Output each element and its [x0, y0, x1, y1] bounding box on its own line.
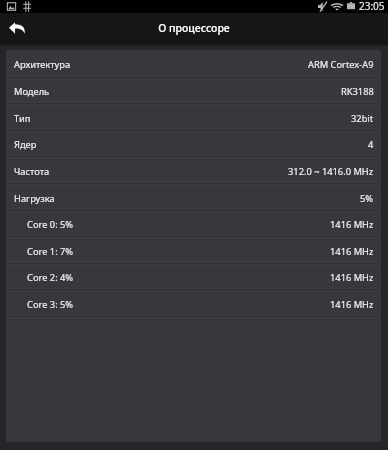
- staticText: Ядер: [14, 138, 37, 151]
- staticText: Core 3: 5%: [27, 298, 74, 311]
- button[interactable]: Core 3: 5%: [6, 291, 381, 318]
- staticText: Модель: [14, 85, 50, 98]
- button[interactable]: Core 0: 5%: [6, 212, 381, 238]
- staticText: Архитектура: [14, 58, 71, 71]
- staticText: Core 2: 4%: [27, 271, 74, 284]
- staticText: 5%: [360, 192, 374, 205]
- staticText: Нагрузка: [14, 192, 55, 205]
- staticText: 1416 MHz: [330, 298, 374, 311]
- button[interactable]: Core 1: 7%: [6, 238, 381, 265]
- button[interactable]: Тип: [6, 105, 381, 132]
- button[interactable]: Core 2: 4%: [6, 265, 381, 291]
- staticText: Частота: [14, 165, 50, 178]
- staticText: О процессоре: [158, 21, 230, 35]
- button[interactable]: Частота: [6, 158, 381, 185]
- button[interactable]: Ядер: [6, 132, 381, 158]
- staticText: 23:05: [359, 0, 385, 12]
- button[interactable]: Архитектура: [6, 50, 381, 79]
- staticText: 312.0 ~ 1416.0 MHz: [288, 165, 374, 178]
- button[interactable]: Нагрузка: [6, 185, 381, 212]
- staticText: 1416 MHz: [330, 271, 374, 284]
- staticText: Core 1: 7%: [27, 245, 74, 258]
- button[interactable]: Модель: [6, 79, 381, 105]
- staticText: Тип: [14, 112, 31, 125]
- staticText: RK3188: [341, 85, 374, 98]
- staticText: 1416 MHz: [330, 245, 374, 258]
- staticText: 32bit: [351, 112, 374, 125]
- staticText: 1416 MHz: [330, 218, 374, 231]
- button[interactable]: Back: [0, 13, 33, 42]
- staticText: Core 0: 5%: [27, 218, 74, 231]
- staticText: 4: [368, 138, 374, 151]
- staticText: ARM Cortex-A9: [308, 58, 374, 71]
